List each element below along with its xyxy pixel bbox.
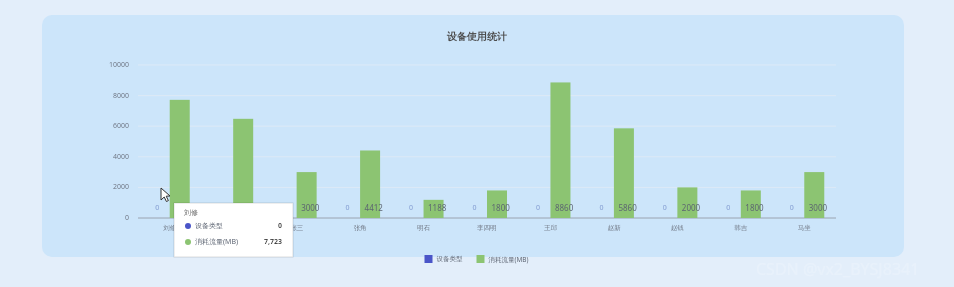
button[interactable] — [0, 0, 954, 287]
other: 设备使用统计 柱状图 — [0, 0, 954, 287]
